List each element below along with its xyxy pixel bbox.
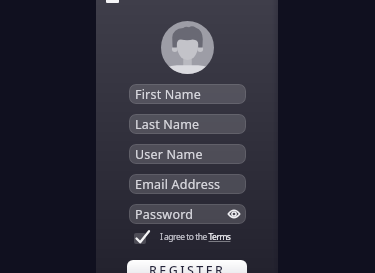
staticText: REGISTER [149, 262, 226, 273]
button[interactable]: Email Address [129, 174, 246, 194]
button[interactable]: Password [129, 204, 246, 224]
button[interactable]: I agree to the Terms [160, 231, 231, 243]
staticText: User Name [135, 146, 203, 163]
button[interactable]: First Name [129, 84, 246, 104]
button[interactable] [134, 233, 146, 244]
staticText: Password [135, 206, 194, 223]
staticText: Last Name [135, 116, 200, 133]
button[interactable] [106, 0, 119, 3]
staticText: First Name [135, 86, 201, 103]
staticText: Email Address [135, 176, 221, 193]
button[interactable]: Last Name [129, 114, 246, 134]
button[interactable]: REGISTER [127, 260, 247, 273]
button[interactable] [161, 21, 214, 74]
button[interactable]: User Name [129, 144, 246, 164]
